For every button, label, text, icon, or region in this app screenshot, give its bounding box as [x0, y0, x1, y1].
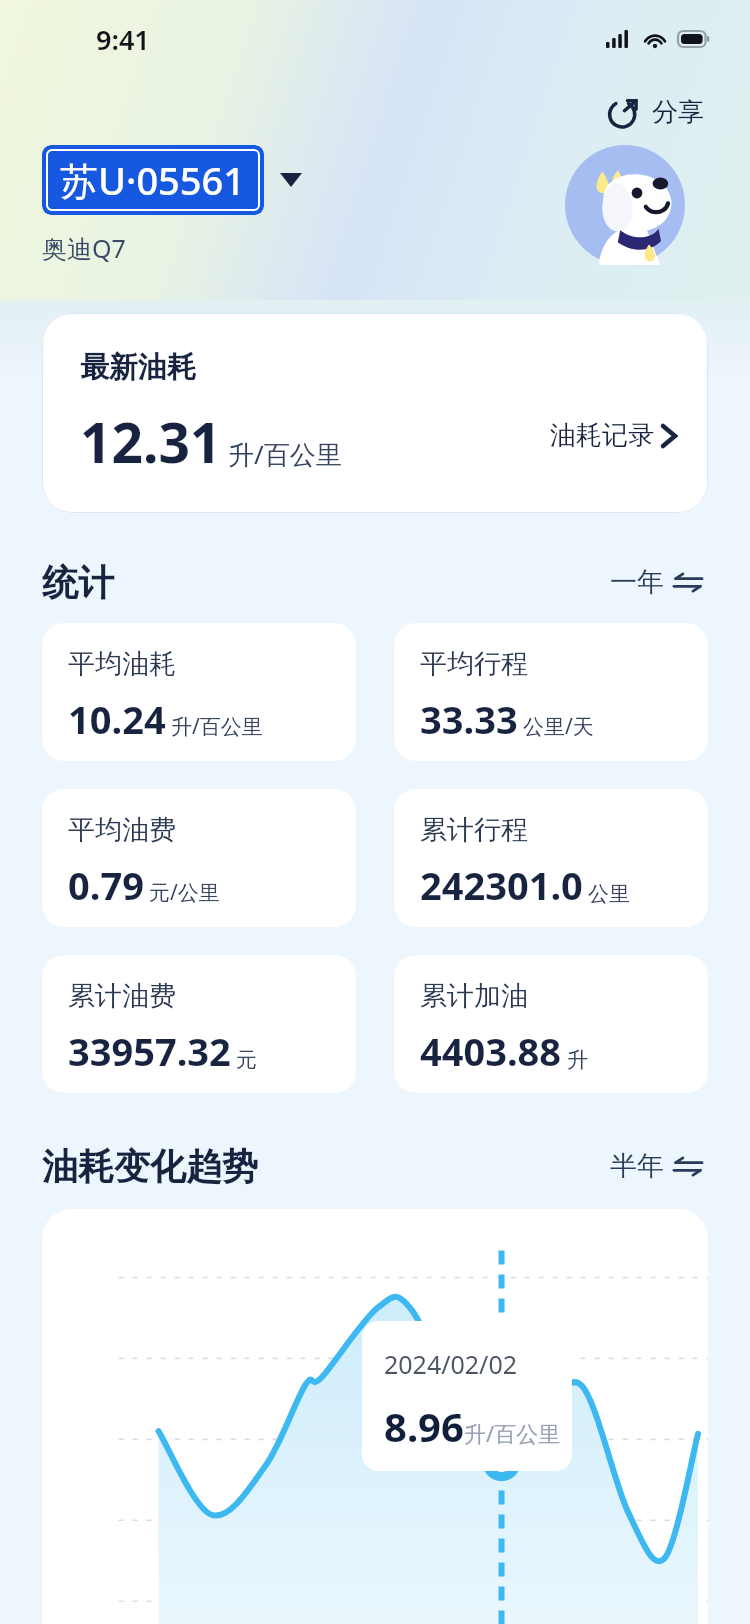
staticText: 最新油耗 [80, 349, 196, 386]
staticText: 33.33 [420, 693, 518, 745]
button[interactable]: 半年 [604, 1143, 708, 1189]
staticText: 242301.0 [420, 859, 583, 911]
button[interactable]: Profile avatar [565, 145, 685, 265]
staticText: 油耗记录 [550, 419, 654, 452]
staticText: 10.24 [68, 693, 166, 745]
staticText: 平均油耗 [68, 647, 176, 681]
staticText: 33957.32 [68, 1025, 231, 1077]
staticText: 半年 [610, 1149, 664, 1183]
button[interactable]: 油耗记录 [544, 413, 682, 458]
staticText: 公里/天 [523, 712, 594, 741]
staticText: 12.31 [80, 404, 222, 479]
staticText: 平均行程 [420, 647, 528, 681]
staticText: 累计加油 [420, 979, 528, 1013]
staticText: 元 [236, 1047, 257, 1073]
button[interactable]: 最新油耗 [42, 313, 708, 513]
staticText: 平均油费 [68, 813, 176, 847]
staticText: 一年 [610, 565, 664, 599]
button[interactable]: 平均行程 [394, 623, 708, 761]
staticText: 分享 [652, 96, 704, 129]
staticText: 奥迪Q7 [42, 231, 126, 265]
staticText: 8.96 [384, 1399, 464, 1453]
staticText: 公里 [588, 881, 630, 907]
staticText: 升/百公里 [228, 436, 342, 472]
staticText: 升 [567, 1047, 588, 1073]
button[interactable]: 平均油费 [42, 789, 356, 927]
staticText: 2024/02/02 [384, 1347, 518, 1381]
staticText: 升/百公里 [171, 712, 263, 741]
staticText: 升/百公里 [464, 1418, 561, 1448]
button[interactable]: 平均油耗 [42, 623, 356, 761]
staticText: 9:41 [96, 21, 150, 58]
staticText: 苏U·05561 [60, 154, 246, 206]
staticText: 元/公里 [149, 878, 220, 907]
staticText: 油耗变化趋势 [42, 1144, 258, 1189]
button[interactable]: 累计油费 [42, 955, 356, 1093]
button[interactable]: 累计行程 [394, 789, 708, 927]
staticText: 累计油费 [68, 979, 176, 1013]
button[interactable]: 一年 [604, 559, 708, 605]
button[interactable]: 分享 [601, 90, 710, 135]
staticText: 4403.88 [420, 1025, 562, 1077]
staticText: 累计行程 [420, 813, 528, 847]
staticText: 0.79 [68, 859, 144, 911]
staticText: 统计 [42, 560, 114, 605]
button[interactable]: 累计加油 [394, 955, 708, 1093]
button[interactable]: 苏U·05561 [42, 145, 264, 215]
